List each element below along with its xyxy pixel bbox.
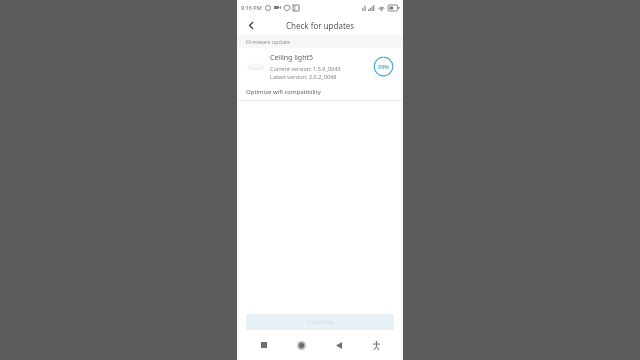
staticText: Check for updates xyxy=(286,20,355,31)
staticText: Optimize wifi compatibility xyxy=(246,88,321,96)
button[interactable]: Home xyxy=(290,334,312,356)
button[interactable]: Ceiling light5 xyxy=(237,48,403,85)
button[interactable]: Optimize wifi compatibility xyxy=(237,85,403,100)
button[interactable]: Recents xyxy=(253,334,275,356)
staticText: Current version: 1.5.9_0043 xyxy=(270,65,341,72)
staticText: 99% xyxy=(378,63,389,70)
button[interactable]: Accessibility xyxy=(365,334,387,356)
staticText: Updating xyxy=(307,318,334,326)
staticText: Latest version: 2.0.2_0048 xyxy=(270,73,337,80)
button[interactable]: Update progress 99 percent xyxy=(373,56,394,77)
staticText: 9:16 PM xyxy=(241,4,262,11)
button[interactable]: Back xyxy=(328,334,350,356)
staticText: Firmware update xyxy=(246,38,291,45)
staticText: Ceiling light5 xyxy=(270,53,314,63)
button[interactable]: Back xyxy=(243,17,259,33)
